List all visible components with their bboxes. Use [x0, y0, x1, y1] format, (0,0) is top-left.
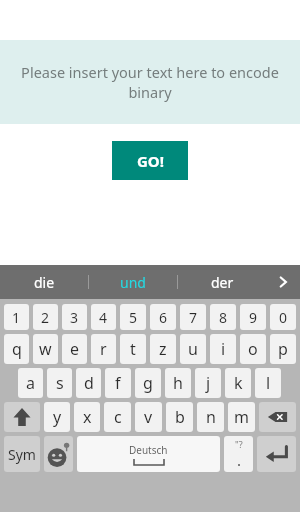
button[interactable]: u [180, 334, 206, 364]
button[interactable]: b [166, 402, 193, 432]
button[interactable]: e [62, 334, 87, 364]
staticText: 2 [41, 308, 50, 327]
staticText: b [175, 406, 185, 428]
button[interactable]: Sym [4, 436, 40, 472]
staticText: 9 [249, 308, 258, 327]
staticText: c [114, 406, 122, 428]
staticText: y [53, 406, 62, 428]
button[interactable]: 7 [180, 304, 206, 330]
staticText: 3 [70, 308, 79, 327]
staticText: p [278, 338, 288, 360]
staticText: n [206, 406, 216, 428]
staticText: Sym [8, 445, 36, 464]
staticText: der [211, 273, 234, 292]
button[interactable]: l [255, 368, 281, 398]
button[interactable]: z [150, 334, 176, 364]
staticText: q [12, 338, 22, 360]
button[interactable]: Shift [4, 402, 40, 432]
staticText: x [83, 406, 92, 428]
button[interactable]: y [44, 402, 70, 432]
button[interactable]: GO! [112, 141, 188, 180]
button[interactable]: v [135, 402, 162, 432]
button[interactable]: 0 [270, 304, 296, 330]
button[interactable]: j [195, 368, 221, 398]
staticText: die [34, 273, 55, 292]
button[interactable]: h [165, 368, 191, 398]
button[interactable]: n [197, 402, 224, 432]
staticText: 8 [219, 308, 228, 327]
button[interactable]: k [225, 368, 251, 398]
staticText: und [120, 273, 146, 292]
staticText: i [221, 338, 226, 360]
staticText: k [234, 372, 243, 394]
staticText: . [237, 450, 242, 470]
staticText: l [266, 372, 271, 394]
staticText: w [39, 338, 52, 360]
button[interactable]: die [0, 265, 88, 299]
button[interactable]: 5 [120, 304, 146, 330]
staticText: h [173, 372, 183, 394]
button[interactable]: s [47, 368, 72, 398]
button[interactable]: r [91, 334, 116, 364]
staticText: 6 [159, 308, 168, 327]
button[interactable]: p [270, 334, 296, 364]
staticText: 1 [12, 308, 21, 327]
staticText: 0 [279, 308, 288, 327]
staticText: e [70, 338, 80, 360]
button[interactable]: t [120, 334, 146, 364]
button[interactable]: More suggestions [266, 265, 300, 299]
button[interactable]: 4 [91, 304, 116, 330]
staticText: f [115, 372, 121, 394]
button[interactable]: m [228, 402, 255, 432]
staticText: o [248, 338, 258, 360]
button[interactable]: g [135, 368, 161, 398]
staticText: r [100, 338, 107, 360]
button[interactable]: i [210, 334, 236, 364]
button[interactable]: der [178, 265, 266, 299]
staticText: m [234, 406, 249, 428]
staticText: Deutsch [129, 443, 168, 457]
staticText: j [206, 372, 211, 394]
staticText: g [143, 372, 153, 394]
button[interactable]: o [240, 334, 266, 364]
button[interactable]: und [89, 265, 177, 299]
button[interactable]: Emoji and voice input [44, 436, 73, 472]
button[interactable]: 8 [210, 304, 236, 330]
button[interactable]: x [74, 402, 100, 432]
button[interactable]: 2 [33, 304, 58, 330]
button[interactable]: 1 [4, 304, 29, 330]
staticText: u [188, 338, 198, 360]
staticText: 5 [129, 308, 138, 327]
staticText: GO! [137, 151, 164, 171]
button[interactable]: Enter [257, 436, 296, 472]
button[interactable]: Backspace [259, 402, 296, 432]
button[interactable]: 3 [62, 304, 87, 330]
staticText: z [159, 338, 167, 360]
staticText: s [56, 372, 64, 394]
staticText: v [144, 406, 153, 428]
button[interactable]: q [4, 334, 29, 364]
staticText: d [84, 372, 94, 394]
button[interactable]: d [76, 368, 101, 398]
staticText: 4 [99, 308, 108, 327]
button[interactable]: 6 [150, 304, 176, 330]
staticText: 7 [189, 308, 198, 327]
button[interactable]: w [33, 334, 58, 364]
button[interactable]: c [104, 402, 131, 432]
button[interactable]: Punctuation [224, 436, 253, 472]
staticText: "? [235, 438, 243, 450]
button[interactable]: a [18, 368, 43, 398]
button[interactable]: Space [77, 436, 220, 472]
staticText: t [130, 338, 136, 360]
button[interactable]: Please insert your text here to encode b… [0, 40, 300, 124]
button[interactable]: f [105, 368, 131, 398]
button[interactable]: 9 [240, 304, 266, 330]
staticText: Please insert your text here to encode b… [10, 62, 290, 102]
staticText: a [26, 372, 35, 394]
